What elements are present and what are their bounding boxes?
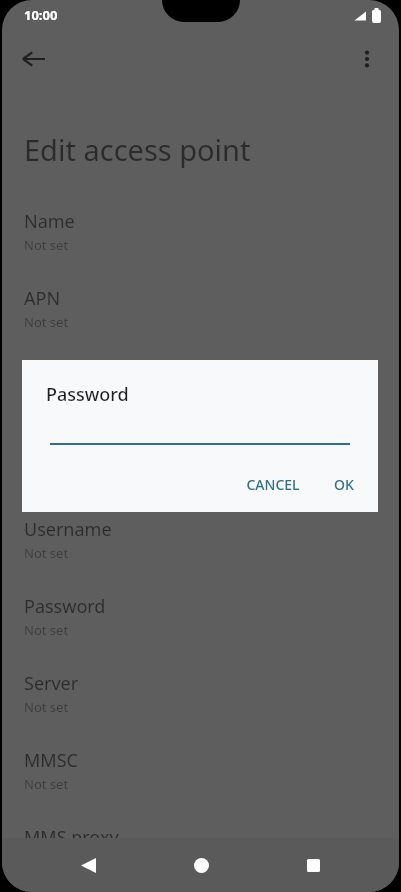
staticText: Password (46, 382, 129, 407)
staticText: Not set (24, 390, 69, 408)
staticText: MMS proxy (24, 825, 119, 850)
button[interactable]: Home (175, 839, 227, 891)
staticText: Not set (24, 621, 69, 639)
button[interactable]: Proxy (2, 353, 399, 430)
button[interactable]: Back (10, 35, 58, 83)
staticText: Edit access point (24, 130, 251, 169)
staticText: Not set (24, 236, 69, 254)
button[interactable]: Password (2, 584, 399, 661)
button[interactable]: MMS proxy (2, 815, 399, 892)
staticText: OK (334, 475, 354, 494)
button[interactable]: Username (2, 507, 399, 584)
button[interactable]: Server (2, 661, 399, 738)
staticText: CANCEL (246, 475, 300, 494)
button[interactable]: CANCEL (236, 467, 310, 502)
button[interactable]: Port (2, 430, 399, 507)
button[interactable]: MMSC (2, 738, 399, 815)
button[interactable]: Recents (287, 839, 339, 891)
staticText: APN (24, 286, 61, 311)
button[interactable]: Back (62, 839, 114, 891)
button[interactable]: Name (2, 199, 399, 276)
staticText: Not set (24, 313, 69, 331)
staticText: Not set (24, 698, 69, 716)
staticText: Password (24, 594, 106, 619)
staticText: Not set (24, 775, 69, 793)
staticText: Not set (24, 544, 69, 562)
staticText: MMSC (24, 748, 78, 773)
staticText: Server (24, 671, 79, 696)
staticText: Port (24, 440, 60, 465)
button[interactable]: OK (324, 467, 364, 502)
staticText: 10:00 (24, 6, 58, 24)
button[interactable]: More options (343, 35, 391, 83)
staticText: Username (24, 517, 112, 542)
button[interactable]: APN (2, 276, 399, 353)
staticText: Name (24, 209, 75, 234)
